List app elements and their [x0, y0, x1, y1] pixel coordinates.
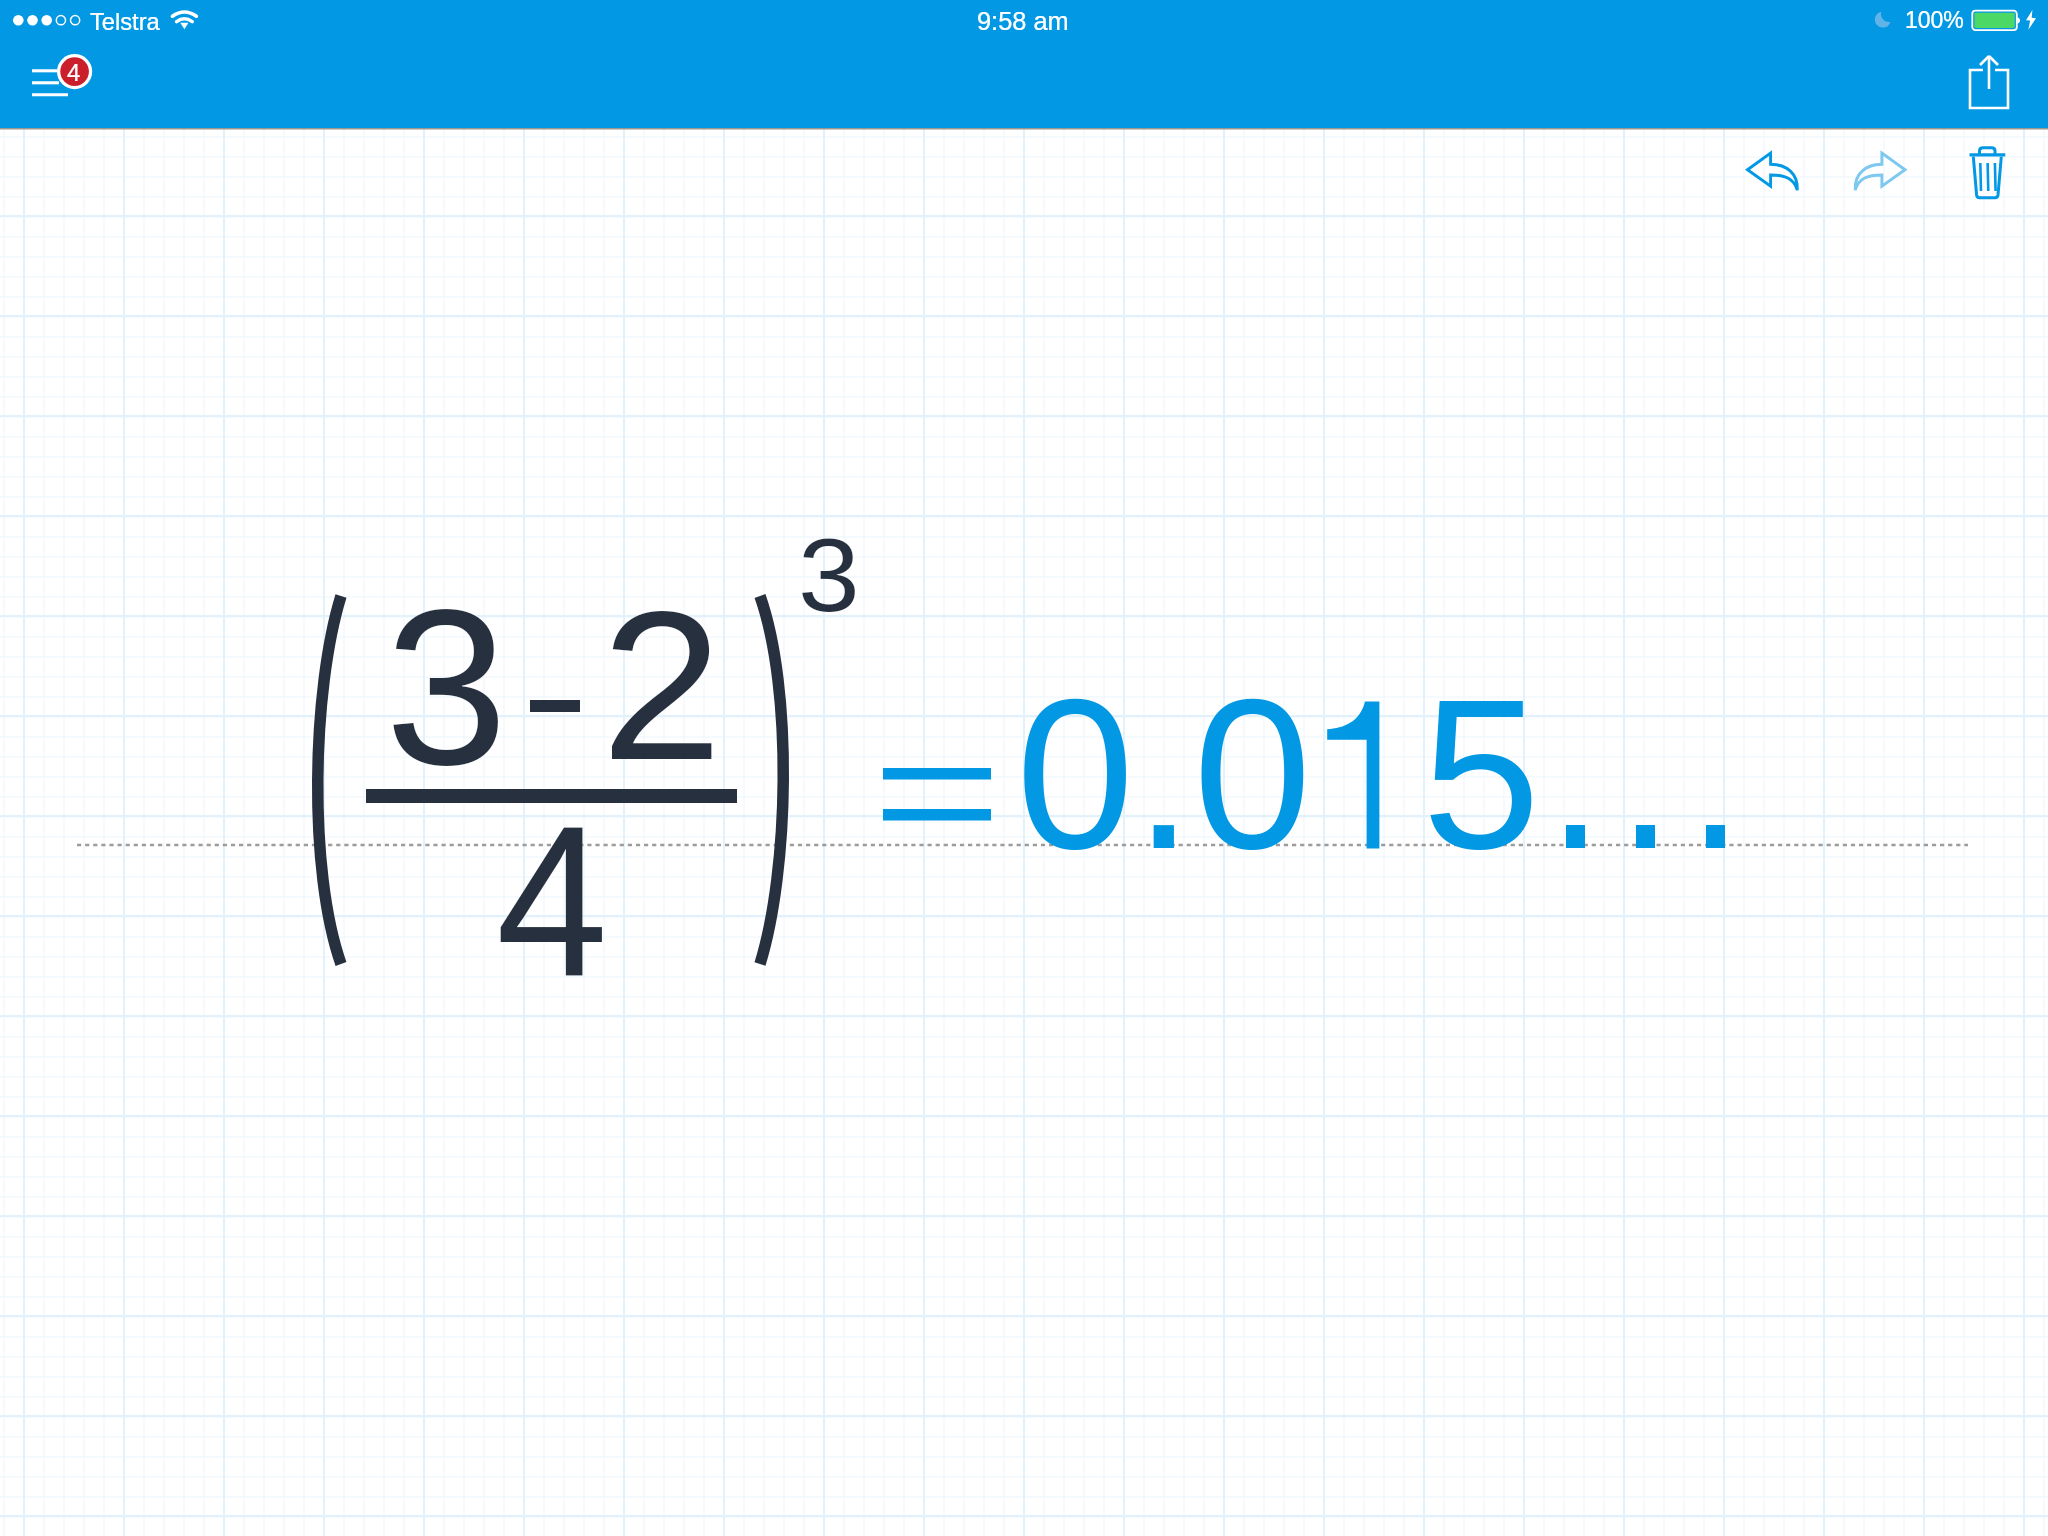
staticText: 4 — [496, 780, 608, 1021]
staticText: 100% — [1905, 7, 1964, 33]
button[interactable]: Undo — [1735, 142, 1811, 202]
button[interactable]: Delete — [1955, 142, 2021, 202]
staticText: 5 — [1422, 656, 1541, 894]
button[interactable]: Menu — [20, 50, 100, 105]
staticText: 3 — [798, 516, 860, 633]
staticText: 2 — [601, 567, 723, 803]
staticText: Telstra — [90, 9, 160, 35]
staticText: 3 — [385, 564, 508, 810]
staticText: 4 — [67, 59, 81, 86]
button[interactable]: Redo — [1845, 142, 1921, 202]
button[interactable]: Share — [1960, 48, 2020, 118]
staticText: 0.0 — [1016, 656, 1312, 894]
staticText: 9:58 am — [977, 7, 1069, 35]
